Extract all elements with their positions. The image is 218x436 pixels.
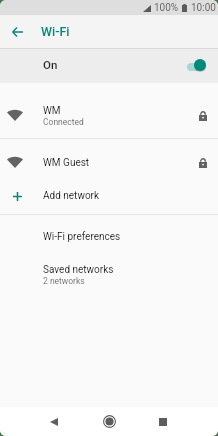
button[interactable]: Recent apps [151,410,175,434]
staticText: On [43,58,58,71]
staticText: Add network [43,190,100,202]
staticText: WM [43,105,61,117]
staticText: Wi-Fi preferences [43,231,121,243]
button[interactable]: Saved networks [0,253,218,297]
staticText: Connected [43,117,84,127]
button[interactable]: WM Guest [0,139,218,186]
staticText: 10:00 [191,2,216,14]
staticText: Saved networks [43,264,114,276]
staticText: Wi-Fi [41,24,70,39]
staticText: 2 networks [43,276,85,286]
button[interactable]: On [0,49,218,83]
button[interactable]: Home [97,409,121,433]
button[interactable]: Back [42,410,66,434]
button[interactable]: Wi-Fi preferences [0,218,218,256]
button[interactable]: Add network [0,182,218,210]
staticText: 100% [154,2,179,14]
button[interactable]: Back [5,20,29,44]
button[interactable]: WM [0,92,218,139]
staticText: WM Guest [43,157,90,169]
